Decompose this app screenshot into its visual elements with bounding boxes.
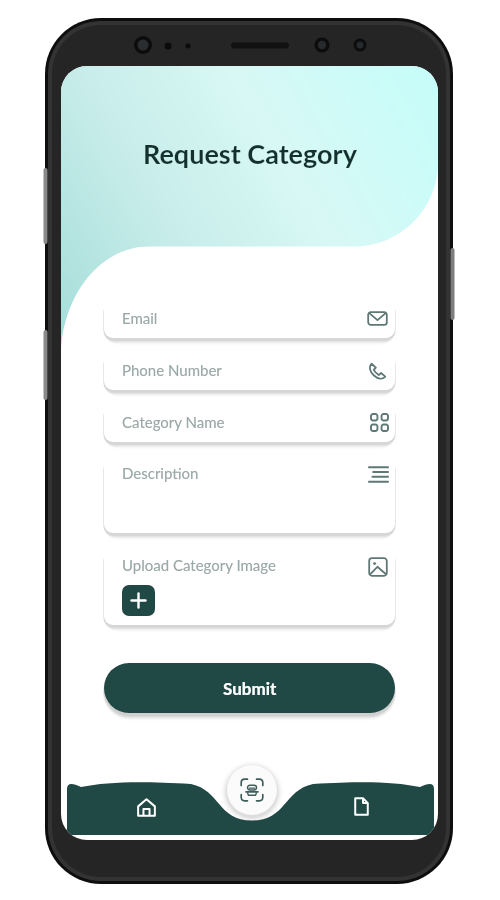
- button[interactable]: Home: [126, 787, 166, 827]
- staticText: Description: [122, 464, 199, 482]
- button[interactable]: Description: [104, 455, 395, 533]
- button[interactable]: Category Name: [104, 402, 395, 442]
- staticText: Phone Number: [122, 361, 222, 379]
- staticText: Upload Category Image: [122, 556, 276, 574]
- button[interactable]: Email: [104, 298, 395, 338]
- button[interactable]: Phone Number: [104, 350, 395, 390]
- staticText: Request Category: [143, 137, 357, 169]
- staticText: Email: [122, 309, 158, 327]
- staticText: Category Name: [122, 413, 225, 431]
- staticText: Submit: [223, 678, 277, 698]
- button[interactable]: Documents: [341, 786, 381, 826]
- button[interactable]: Scan: [227, 765, 277, 815]
- button[interactable]: Submit: [104, 663, 395, 713]
- button[interactable]: Add image: [122, 585, 155, 616]
